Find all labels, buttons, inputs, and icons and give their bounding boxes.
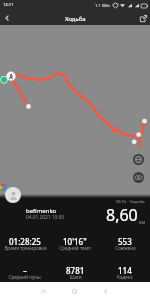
button[interactable]: Back: [0, 11, 14, 25]
staticText: 8781: [66, 265, 85, 276]
button[interactable]: Home: [67, 284, 81, 298]
staticText: 1.1 KB/s: [95, 3, 111, 8]
staticText: Mi Fit · Ходьба: [116, 199, 145, 205]
staticText: Время тренировки: [4, 245, 47, 251]
staticText: 04.01.2021 10:50: [26, 214, 65, 221]
staticText: –: [23, 265, 27, 276]
staticText: 12:11: [3, 2, 14, 7]
button[interactable]: Map type: [133, 154, 144, 165]
staticText: км: [139, 219, 145, 225]
staticText: 10'16": [63, 236, 87, 247]
staticText: 01:28:25: [9, 236, 41, 247]
button[interactable]: Profile photo: [5, 187, 21, 203]
staticText: Средний пульс: [8, 274, 42, 280]
staticText: Ходьба: [65, 15, 86, 23]
button[interactable]: Back: [98, 284, 112, 298]
staticText: 114: [118, 265, 132, 276]
button[interactable]: Recents: [36, 284, 50, 298]
staticText: 553: [118, 236, 132, 247]
staticText: befimenko: [26, 207, 57, 215]
staticText: Сожжено: [115, 245, 136, 251]
staticText: Средний темп: [59, 245, 91, 251]
staticText: Шаги: [69, 274, 82, 280]
staticText: Каденс: [117, 274, 133, 280]
button[interactable]: Share snapshot: [133, 172, 144, 183]
button[interactable]: Share: [136, 11, 150, 25]
staticText: 8,60: [106, 204, 138, 226]
